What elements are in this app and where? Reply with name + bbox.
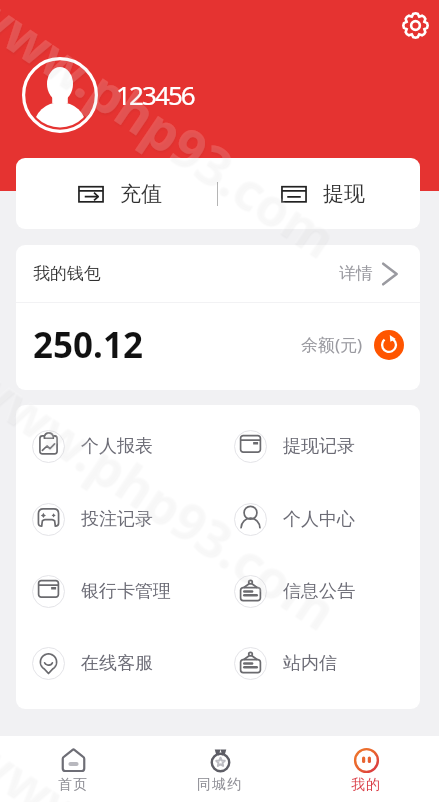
button[interactable]: 在线客服 [16,627,218,699]
button[interactable]: 提现 [218,158,420,229]
button[interactable]: Settings [401,11,430,40]
staticText: 提现 [323,181,365,207]
button[interactable]: 投注记录 [16,483,218,555]
button[interactable]: 同城约 [147,736,293,802]
button[interactable]: 个人中心 [218,483,420,555]
staticText: 充值 [120,181,162,207]
button[interactable]: 首页 [0,736,147,802]
button[interactable]: 提现记录 [218,410,420,483]
staticText: 余额(元) [301,333,363,356]
button[interactable]: 个人报表 [16,410,218,483]
button[interactable]: Avatar [22,57,98,133]
staticText: 提现记录 [283,435,355,458]
button[interactable]: 我的 [293,736,439,802]
button[interactable]: 充值 [16,158,217,229]
button[interactable]: 站内信 [218,627,420,699]
staticText: 250.12 [33,321,143,369]
staticText: www.php93.com [0,716,350,802]
staticText: 我的 [351,776,382,794]
staticText: 信息公告 [283,580,355,603]
staticText: 在线客服 [81,652,153,675]
staticText: 个人报表 [81,435,153,458]
staticText: 银行卡管理 [81,580,171,603]
staticText: 投注记录 [81,508,153,531]
staticText: 我的钱包 [33,263,101,284]
button[interactable]: 信息公告 [218,555,420,627]
staticText: www.php93.com [0,0,350,271]
staticText: 站内信 [283,652,337,675]
staticText: 同城约 [197,776,243,794]
staticText: www.php93.com [0,344,350,643]
button[interactable]: 银行卡管理 [16,555,218,627]
button[interactable]: Refresh balance [374,330,404,360]
staticText: 详情 [339,263,373,284]
button[interactable]: 我的钱包 [16,245,420,302]
staticText: 首页 [58,776,89,794]
staticText: 123456 [116,77,194,112]
staticText: 个人中心 [283,508,355,531]
